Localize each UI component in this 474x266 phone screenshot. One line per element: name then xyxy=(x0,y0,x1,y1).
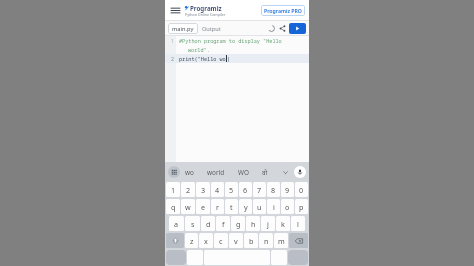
staticText: j xyxy=(267,219,269,229)
staticText: i xyxy=(273,202,275,212)
staticText: v xyxy=(234,236,238,246)
button[interactable]: Share xyxy=(277,23,288,34)
button[interactable]: 3 xyxy=(196,182,210,197)
button[interactable]: WO xyxy=(237,164,250,180)
staticText: d xyxy=(206,219,211,229)
staticText: wo xyxy=(185,168,194,177)
button[interactable]: o xyxy=(281,199,294,214)
button[interactable]: a xyxy=(169,216,184,231)
button[interactable]: Keyboard switch xyxy=(168,166,180,178)
staticText: w xyxy=(185,202,191,212)
button[interactable]: wo xyxy=(184,164,195,180)
button[interactable]: h xyxy=(246,216,260,231)
staticText: Programiz PRO xyxy=(264,7,302,14)
staticText: वो xyxy=(262,168,268,177)
staticText: 1 xyxy=(171,185,176,195)
staticText: world". xyxy=(188,46,210,53)
staticText: h xyxy=(251,219,256,229)
button[interactable]: 8 xyxy=(267,182,280,197)
button[interactable]: Output xyxy=(198,23,225,34)
button[interactable]: 9 xyxy=(281,182,294,197)
button[interactable]: c xyxy=(214,233,228,248)
staticText: Programiz xyxy=(190,4,222,12)
staticText: world xyxy=(207,168,225,177)
staticText: 6 xyxy=(243,185,248,195)
button[interactable]: z xyxy=(185,233,198,248)
button[interactable]: 4 xyxy=(211,182,224,197)
button[interactable]: w xyxy=(181,199,195,214)
button[interactable]: More suggestions xyxy=(280,167,290,177)
button[interactable]: k xyxy=(276,216,290,231)
staticText: s xyxy=(191,219,195,229)
button[interactable]: m xyxy=(274,233,288,248)
button[interactable]: Shift xyxy=(166,233,184,248)
button[interactable]: e xyxy=(196,199,210,214)
staticText: e xyxy=(201,202,206,212)
button[interactable]: Run xyxy=(289,23,306,34)
staticText: #Python program to display "Hello xyxy=(179,37,282,44)
staticText: k xyxy=(281,219,285,229)
staticText: t xyxy=(230,202,233,212)
button[interactable]: d xyxy=(201,216,215,231)
button[interactable]: main.py xyxy=(168,23,198,34)
button[interactable]: 6 xyxy=(239,182,252,197)
staticText: 7 xyxy=(257,185,262,195)
button[interactable]: r xyxy=(211,199,224,214)
staticText: b xyxy=(249,236,254,246)
staticText: 3 xyxy=(201,185,206,195)
staticText: y xyxy=(244,202,248,212)
button[interactable]: Programiz PRO xyxy=(261,5,305,16)
button[interactable]: b xyxy=(244,233,258,248)
button[interactable]: 7 xyxy=(253,182,266,197)
button[interactable]: y xyxy=(239,199,252,214)
button[interactable]: n xyxy=(259,233,273,248)
button[interactable]: 0 xyxy=(295,182,308,197)
button[interactable]: Menu xyxy=(169,4,182,17)
button[interactable]: x xyxy=(199,233,213,248)
button[interactable]: 1 xyxy=(166,182,180,197)
button[interactable]: Voice input xyxy=(294,166,306,178)
button[interactable]: वो xyxy=(261,164,269,180)
button[interactable]: i xyxy=(267,199,280,214)
staticText: 5 xyxy=(229,185,234,195)
staticText: x xyxy=(204,236,208,246)
staticText: Output xyxy=(202,25,221,33)
button[interactable]: 5 xyxy=(225,182,238,197)
staticText: Python Online Compiler xyxy=(185,12,226,17)
staticText: 2 xyxy=(171,55,174,62)
staticText: 2 xyxy=(186,185,191,195)
staticText: 8 xyxy=(271,185,276,195)
staticText: g xyxy=(236,219,241,229)
staticText: u xyxy=(257,202,262,212)
staticText: m xyxy=(278,236,285,246)
button[interactable]: u xyxy=(253,199,266,214)
staticText: p xyxy=(299,202,304,212)
staticText: 4 xyxy=(215,185,220,195)
staticText: z xyxy=(190,236,194,246)
button[interactable]: g xyxy=(231,216,245,231)
staticText: 1 xyxy=(171,37,174,44)
button[interactable]: j xyxy=(261,216,275,231)
button[interactable]: q xyxy=(166,199,180,214)
button[interactable]: v xyxy=(229,233,243,248)
button[interactable]: p xyxy=(295,199,308,214)
button[interactable]: world xyxy=(206,164,226,180)
staticText: a xyxy=(174,219,179,229)
staticText: n xyxy=(264,236,269,246)
staticText: 0 xyxy=(299,185,304,195)
staticText: main.py xyxy=(172,25,194,33)
button[interactable]: l xyxy=(291,216,305,231)
button[interactable]: Enter xyxy=(288,250,308,265)
button[interactable]: 2 xyxy=(181,182,195,197)
button[interactable]: Dark mode xyxy=(266,23,277,34)
button[interactable]: t xyxy=(225,199,238,214)
button[interactable]: Backspace xyxy=(289,233,308,248)
button[interactable]: Symbols xyxy=(166,250,186,265)
staticText: f xyxy=(222,219,225,229)
button[interactable]: s xyxy=(185,216,200,231)
button[interactable]: 1 xyxy=(165,36,309,162)
button[interactable]: f xyxy=(216,216,230,231)
